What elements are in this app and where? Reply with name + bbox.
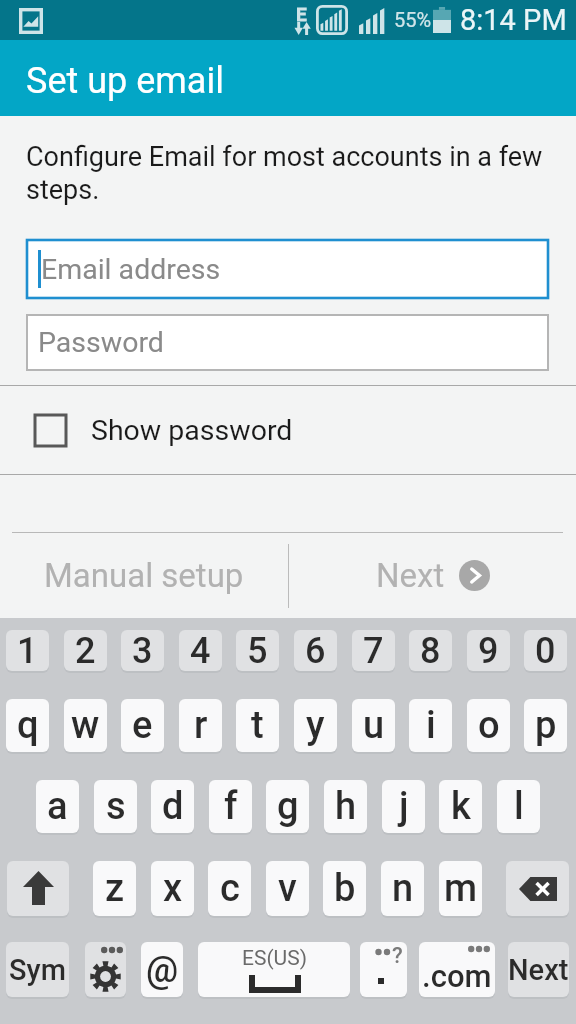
staticText: e [132, 703, 153, 748]
staticText: a [47, 784, 68, 829]
staticText: Email address [41, 253, 221, 286]
staticText: i [426, 703, 436, 748]
other: Screenshot captured [19, 8, 43, 34]
staticText: b [334, 866, 356, 911]
staticText: 6 [305, 630, 326, 671]
button[interactable]: t [236, 699, 279, 752]
staticText: 8:14 PM [460, 3, 567, 37]
button[interactable]: Sym [6, 942, 69, 997]
staticText: Set up email [26, 60, 224, 102]
staticText: x [163, 866, 183, 911]
button[interactable]: Show password [0, 386, 576, 474]
staticText: u [363, 703, 385, 748]
button[interactable]: j [382, 780, 425, 833]
button[interactable]: b [323, 861, 366, 916]
button[interactable]: x [151, 861, 194, 916]
button[interactable]: v [266, 861, 309, 916]
button[interactable]: m [439, 861, 482, 916]
staticText: v [278, 866, 297, 911]
staticText: j [399, 784, 409, 829]
button[interactable]: 3 [121, 630, 164, 671]
button[interactable]: r [179, 699, 222, 752]
staticText: 1 [17, 630, 38, 671]
button[interactable]: 7 [352, 630, 395, 671]
staticText: f [224, 784, 238, 829]
button[interactable]: Settings [85, 942, 126, 997]
button[interactable]: 4 [179, 630, 222, 671]
staticText: 7 [363, 630, 384, 671]
staticText: t [251, 703, 264, 748]
staticText: q [17, 703, 39, 748]
staticText: 2 [75, 630, 96, 671]
staticText: d [162, 784, 184, 829]
button[interactable]: Next [508, 942, 569, 997]
staticText: Show password [91, 414, 293, 447]
button[interactable]: k [439, 780, 482, 833]
staticText: 8 [420, 630, 441, 671]
staticText: z [105, 866, 125, 911]
button[interactable]: i [409, 699, 452, 752]
staticText: Next [508, 953, 569, 987]
staticText: p [535, 703, 557, 748]
button[interactable]: 0 [524, 630, 567, 671]
staticText: k [451, 784, 471, 829]
button[interactable]: o [467, 699, 510, 752]
button[interactable]: c [208, 861, 251, 916]
staticText: n [392, 866, 414, 911]
button[interactable]: Manual setup [0, 533, 288, 618]
staticText: .com [422, 958, 492, 994]
button[interactable]: Shift [7, 861, 69, 916]
staticText: Sym [9, 953, 66, 987]
button[interactable]: 9 [467, 630, 510, 671]
staticText: ? [392, 943, 403, 969]
button[interactable]: 2 [64, 630, 107, 671]
button[interactable]: Backspace [506, 861, 569, 916]
button[interactable]: @ [141, 942, 183, 997]
button[interactable]: q [6, 699, 49, 752]
button[interactable]: 5 [236, 630, 279, 671]
button[interactable]: h [324, 780, 367, 833]
staticText: 3 [132, 630, 153, 671]
staticText: r [194, 703, 208, 748]
staticText: Configure Email for most accounts in a f… [26, 141, 558, 206]
staticText: y [306, 703, 325, 748]
button[interactable]: p [524, 699, 567, 752]
button[interactable]: d [151, 780, 194, 833]
button[interactable]: u [352, 699, 395, 752]
button[interactable]: 6 [294, 630, 337, 671]
staticText: 0 [535, 630, 556, 671]
staticText: 5 [247, 630, 268, 671]
staticText: h [335, 784, 357, 829]
staticText: c [220, 866, 240, 911]
button[interactable]: s [94, 780, 137, 833]
button[interactable]: l [497, 780, 540, 833]
button[interactable]: Space [198, 942, 350, 997]
button[interactable]: Email address [27, 240, 548, 298]
staticText: E [296, 3, 307, 25]
staticText: o [478, 703, 500, 748]
staticText: 9 [478, 630, 499, 671]
staticText: 55% [394, 8, 432, 31]
staticText: s [106, 784, 126, 829]
button[interactable]: w [64, 699, 107, 752]
button[interactable]: g [266, 780, 309, 833]
button[interactable]: a [36, 780, 79, 833]
button[interactable]: Password [27, 315, 548, 370]
staticText: Next [376, 556, 445, 595]
button[interactable]: Next [289, 533, 576, 618]
button[interactable]: 1 [6, 630, 49, 671]
button[interactable]: y [294, 699, 337, 752]
button[interactable]: z [93, 861, 136, 916]
staticText: 4 [190, 630, 211, 671]
button[interactable]: 8 [409, 630, 452, 671]
button[interactable]: .com [419, 942, 495, 997]
button[interactable]: n [381, 861, 424, 916]
staticText: Manual setup [44, 556, 244, 595]
button[interactable]: ? [360, 942, 407, 997]
staticText: l [514, 784, 524, 829]
staticText: w [71, 703, 100, 748]
button[interactable]: e [121, 699, 164, 752]
staticText: m [444, 866, 478, 911]
button[interactable]: f [209, 780, 252, 833]
staticText: ES(US) [242, 946, 307, 971]
